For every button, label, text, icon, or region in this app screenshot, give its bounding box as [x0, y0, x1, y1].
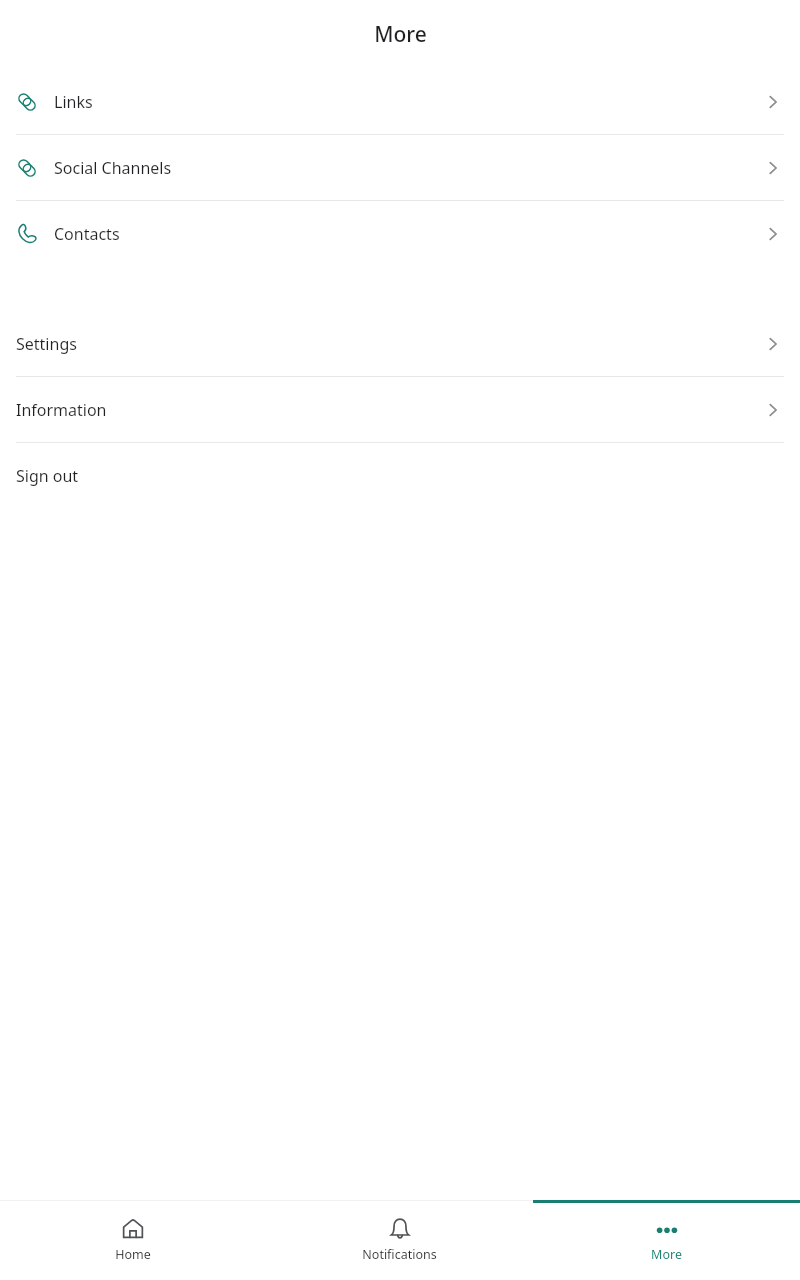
button[interactable]: Sign out: [0, 443, 800, 508]
button[interactable]: Phone: [0, 201, 800, 266]
button[interactable]: Settings: [0, 311, 800, 376]
staticText: Home: [115, 1246, 151, 1263]
button[interactable]: Notifications: [266, 1203, 533, 1280]
button[interactable]: Information: [0, 377, 800, 442]
staticText: Sign out: [16, 465, 79, 487]
button[interactable]: Link: [0, 135, 800, 200]
other: Link: [16, 91, 38, 113]
button[interactable]: Link: [0, 69, 800, 134]
staticText: Links: [54, 91, 93, 113]
button[interactable]: Home: [0, 1203, 266, 1280]
other: Phone: [16, 223, 38, 245]
staticText: Social Channels: [54, 157, 172, 179]
staticText: More: [651, 1246, 682, 1263]
staticText: Settings: [16, 333, 77, 355]
button[interactable]: More: [533, 1203, 800, 1280]
staticText: Contacts: [54, 223, 120, 245]
other: Link: [16, 157, 38, 179]
staticText: Information: [16, 399, 107, 421]
staticText: More: [374, 20, 427, 49]
staticText: Notifications: [362, 1246, 437, 1263]
